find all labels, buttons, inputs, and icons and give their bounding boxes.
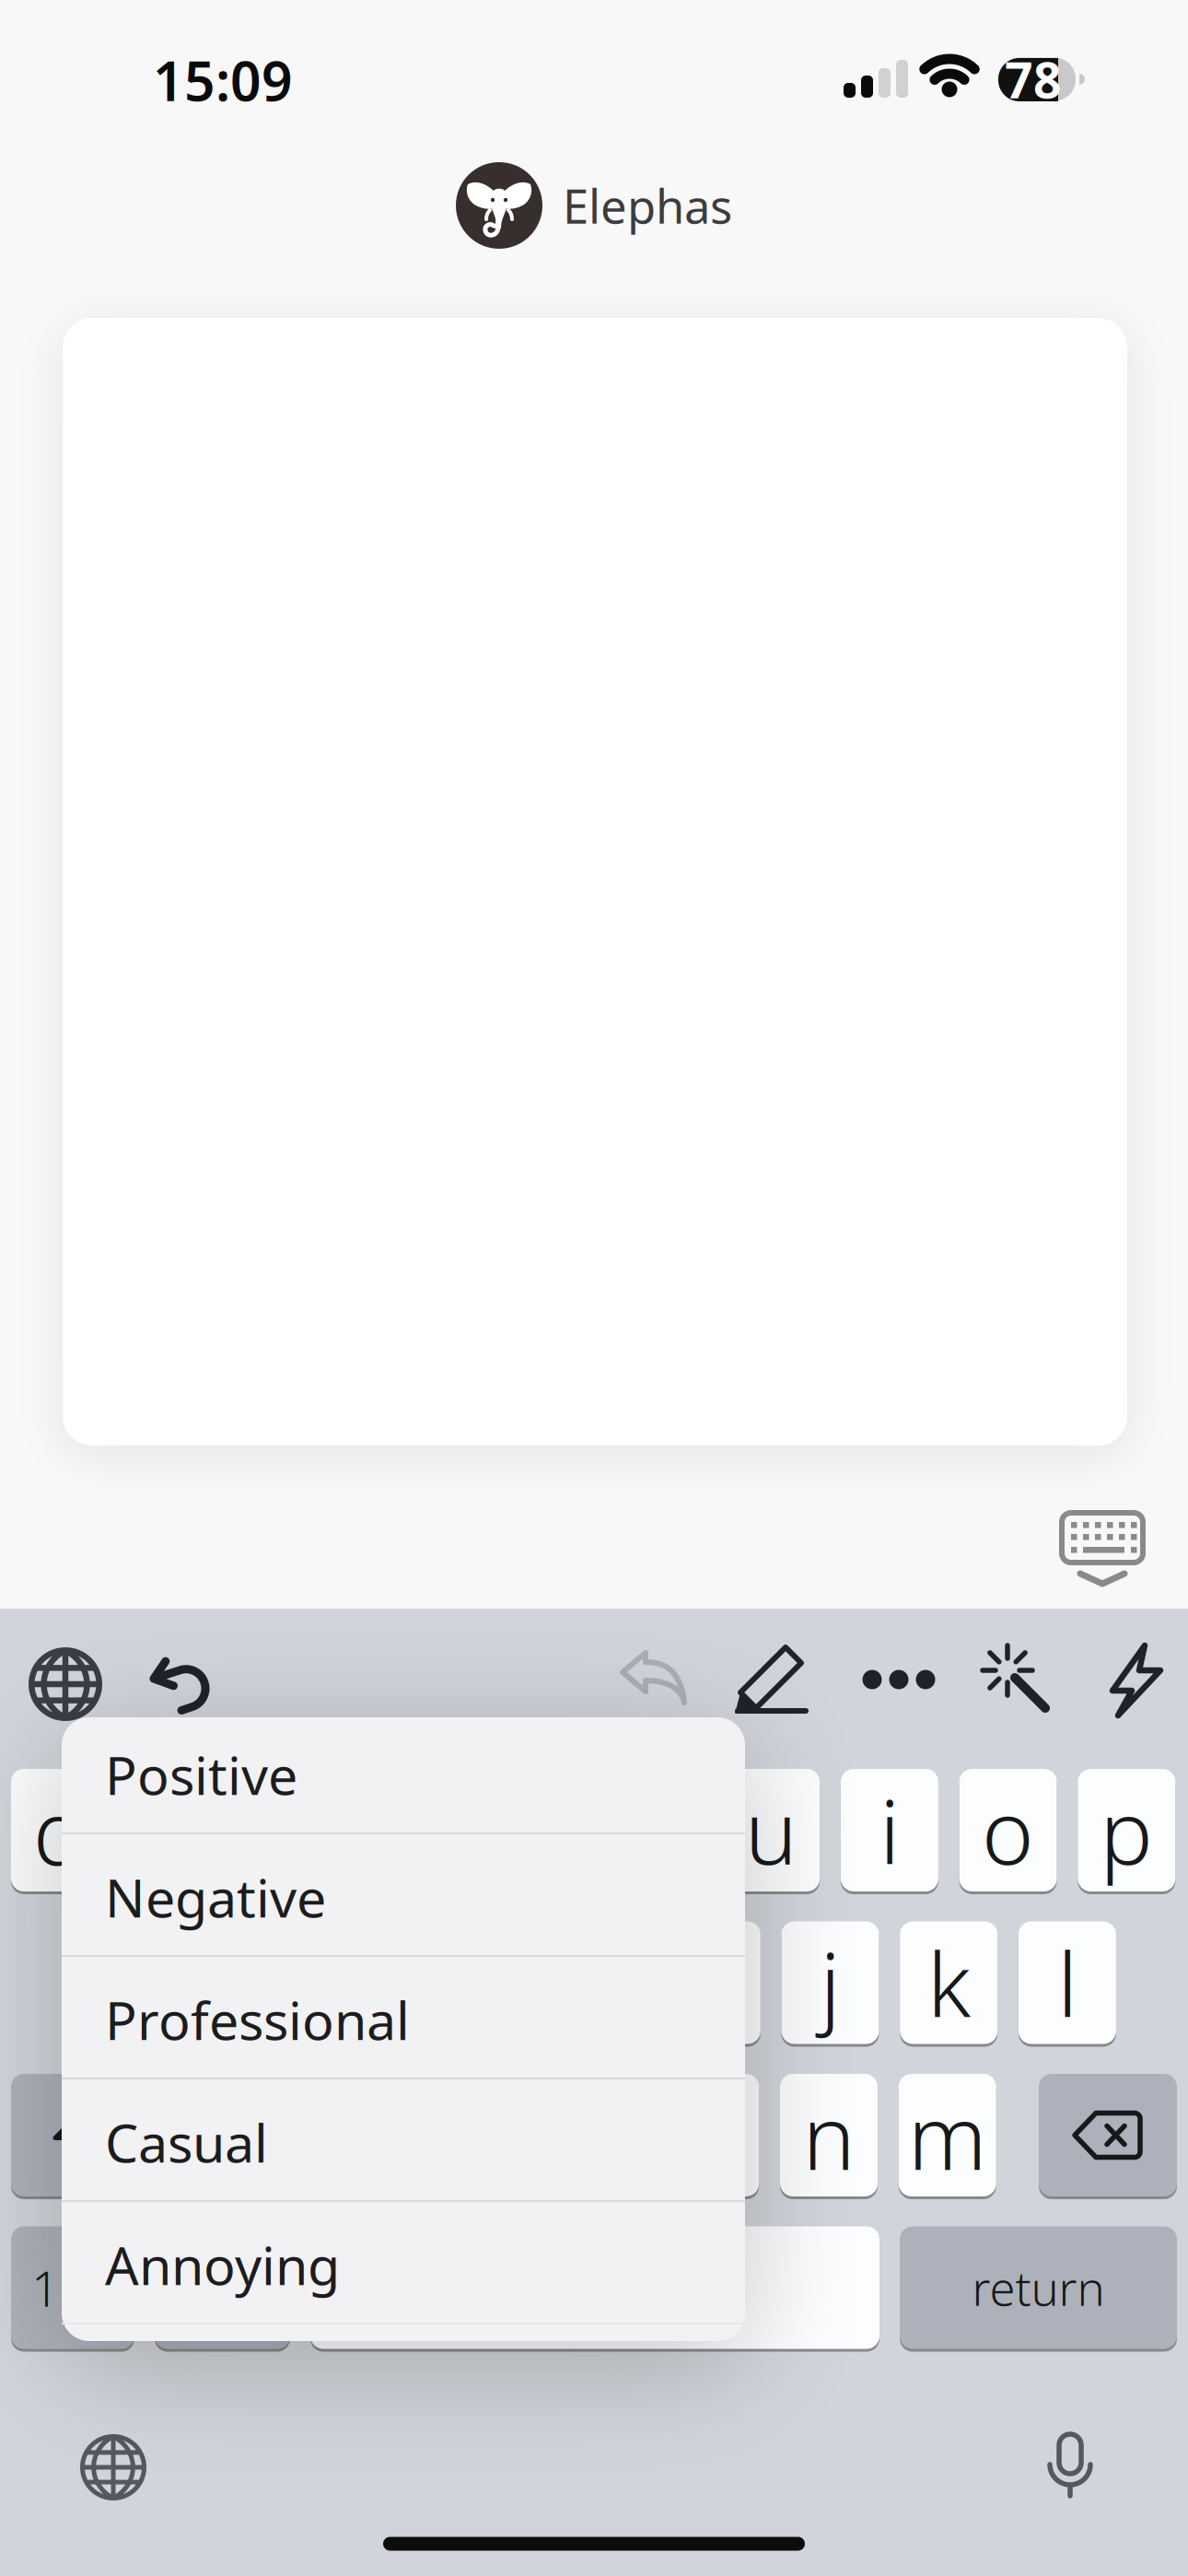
button[interactable]: Delete <box>1039 2074 1177 2196</box>
button[interactable]: Negative <box>62 1837 745 1957</box>
staticText: q <box>33 1772 87 1889</box>
staticText: n <box>803 2076 855 2194</box>
staticText: Professional <box>105 1984 410 2055</box>
button[interactable]: w <box>130 1769 227 1891</box>
staticText: 123 <box>31 2255 114 2320</box>
staticText: z <box>216 2076 256 2194</box>
button[interactable]: b <box>662 2074 759 2196</box>
button[interactable]: e <box>248 1769 346 1891</box>
staticText: x <box>333 2076 377 2194</box>
button[interactable]: y <box>604 1769 701 1891</box>
button[interactable]: f <box>426 1921 523 2044</box>
button[interactable]: r <box>367 1769 464 1891</box>
staticText: t <box>519 1772 549 1889</box>
button[interactable]: i <box>841 1769 938 1891</box>
staticText: v <box>571 2076 613 2194</box>
button[interactable]: Dismiss Keyboard <box>1059 1510 1146 1587</box>
button[interactable]: g <box>544 1921 642 2044</box>
staticText: Elephas <box>563 174 732 237</box>
button[interactable]: t <box>485 1769 583 1891</box>
button[interactable]: a <box>70 1921 168 2044</box>
staticText: e <box>273 1772 321 1889</box>
staticText: Negative <box>105 1862 326 1932</box>
button[interactable]: Casual <box>62 2082 745 2202</box>
button[interactable]: v <box>543 2074 641 2196</box>
button[interactable]: q <box>11 1769 109 1891</box>
staticText: m <box>908 2076 987 2194</box>
button[interactable]: x <box>306 2074 404 2196</box>
button[interactable]: m <box>899 2074 996 2196</box>
staticText: g <box>566 1924 620 2041</box>
button[interactable]: key <box>310 2226 879 2349</box>
button[interactable]: Annoying <box>62 2204 745 2325</box>
staticText: a <box>96 1924 143 2041</box>
staticText: j <box>820 1924 840 2041</box>
staticText: y <box>632 1772 673 1889</box>
button[interactable]: p <box>1078 1769 1175 1891</box>
staticText: s <box>217 1924 258 2041</box>
staticText: i <box>879 1772 900 1889</box>
button[interactable]: Revert <box>620 1651 690 1706</box>
button[interactable]: Shift <box>11 2074 149 2196</box>
button[interactable]: z <box>187 2074 285 2196</box>
button[interactable]: Dictate <box>1043 2431 1097 2500</box>
staticText: 15:09 <box>153 44 293 116</box>
button[interactable]: Professional <box>62 1959 745 2080</box>
staticText: w <box>146 1772 211 1889</box>
staticText: Casual <box>105 2107 268 2177</box>
button[interactable]: Quick Action <box>1108 1643 1165 1718</box>
button[interactable]: Magic <box>981 1644 1051 1714</box>
button[interactable]: k <box>900 1921 998 2044</box>
button[interactable]: key <box>155 2226 290 2349</box>
button[interactable]: s <box>189 1921 286 2044</box>
button[interactable]: 123 <box>11 2226 134 2349</box>
button[interactable]: h <box>663 1921 761 2044</box>
button[interactable]: u <box>722 1769 820 1891</box>
staticText: d <box>329 1924 383 2041</box>
button[interactable]: d <box>307 1921 405 2044</box>
staticText: Positive <box>105 1739 297 1809</box>
staticText: return <box>972 2257 1105 2319</box>
button[interactable]: More <box>862 1669 936 1690</box>
button[interactable]: return <box>900 2226 1177 2349</box>
button[interactable]: n <box>780 2074 878 2196</box>
staticText: l <box>1057 1924 1077 2041</box>
button[interactable]: o <box>959 1769 1057 1891</box>
button[interactable]: j <box>781 1921 879 2044</box>
button[interactable]: Next Keyboard <box>79 2433 147 2501</box>
staticText: 78 <box>1005 47 1062 112</box>
staticText: Annoying <box>105 2229 340 2300</box>
button[interactable]: Positive <box>62 1714 745 1835</box>
staticText: c <box>452 2076 494 2194</box>
button[interactable]: Undo <box>151 1654 212 1713</box>
staticText: u <box>745 1772 797 1889</box>
button[interactable]: Switch Keyboard <box>28 1646 103 1722</box>
button[interactable]: Rewrite <box>734 1645 809 1716</box>
staticText: o <box>982 1772 1034 1889</box>
button[interactable]: l <box>1018 1921 1116 2044</box>
staticText: k <box>927 1924 970 2041</box>
staticText: r <box>398 1772 433 1889</box>
staticText: b <box>684 2076 737 2194</box>
staticText: p <box>1100 1772 1153 1889</box>
staticText: f <box>461 1924 488 2041</box>
button[interactable]: c <box>424 2074 522 2196</box>
staticText: h <box>685 1924 738 2041</box>
